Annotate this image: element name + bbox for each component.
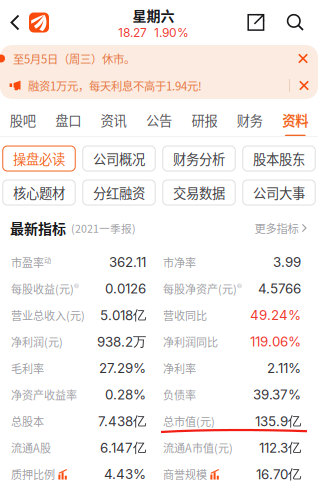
staticText: 质押比例: [11, 466, 55, 482]
staticText: 净利率: [163, 360, 196, 376]
staticText: 盘口: [55, 110, 81, 130]
staticText: ?: [75, 283, 77, 288]
staticText: 营业总收入(元): [11, 307, 85, 323]
staticText: (2021一季报): [71, 220, 136, 236]
staticText: 5.018亿: [100, 307, 146, 324]
button[interactable]: Close: [288, 45, 318, 72]
staticText: 交易数据: [173, 183, 225, 202]
staticText: 4.43%: [104, 466, 146, 482]
staticText: 公告: [146, 110, 172, 130]
staticText: 负债率: [163, 387, 196, 403]
staticText: 公司概况: [93, 149, 145, 168]
staticText: 流通A股: [11, 440, 51, 456]
staticText: 毛利率: [11, 360, 44, 376]
staticText: 更多指标: [255, 220, 299, 236]
staticText: 3.99: [273, 254, 301, 270]
staticText: 市净率: [163, 254, 196, 270]
staticText: 星期六: [132, 5, 174, 25]
staticText: 至5月5日（周三）休市。: [13, 50, 135, 67]
staticText: 财务分析: [173, 149, 225, 168]
button[interactable]: 研报: [182, 99, 227, 136]
button[interactable]: 财务分析: [163, 146, 235, 171]
staticText: 39.37%: [253, 387, 301, 403]
staticText: 27.29%: [99, 360, 146, 376]
button[interactable]: 操盘必读: [3, 146, 75, 171]
button[interactable]: 资料: [273, 99, 318, 136]
button[interactable]: Search: [284, 2, 306, 42]
button[interactable]: 公司概况: [83, 146, 155, 171]
button[interactable]: 股本股东: [243, 146, 315, 171]
button[interactable]: 公司大事: [243, 180, 315, 205]
button[interactable]: 盘口: [45, 99, 91, 136]
staticText: 0.28%: [105, 387, 146, 403]
staticText: 净利润(元): [11, 334, 63, 350]
staticText: 商誉规模: [163, 466, 207, 482]
button[interactable]: 公告: [136, 99, 182, 136]
staticText: 16.70亿: [256, 466, 301, 483]
staticText: 市盈率: [11, 254, 44, 270]
staticText: 18.27: [118, 25, 147, 40]
staticText: 净利润同比: [163, 334, 218, 350]
button[interactable]: 股吧: [0, 99, 45, 136]
staticText: 流通A市值(元): [163, 440, 233, 456]
staticText: 融资1万元，每天利息不高于1.94元!: [28, 77, 202, 94]
button[interactable]: Close: [290, 72, 318, 99]
staticText: 总市值(元): [163, 413, 215, 429]
staticText: 研报: [191, 110, 217, 130]
staticText: 0.0126: [105, 281, 146, 297]
staticText: 49.24%: [250, 307, 301, 323]
staticText: 每股收益(元): [11, 281, 74, 297]
staticText: 362.11: [109, 254, 146, 270]
staticText: 6.147亿: [100, 439, 146, 456]
staticText: 112.3亿: [259, 439, 301, 456]
button[interactable]: 更多指标: [255, 213, 318, 243]
button[interactable]: 资讯: [91, 99, 136, 136]
staticText: 135.9亿: [255, 413, 301, 430]
staticText: 7.438亿: [98, 413, 146, 430]
staticText: ?: [238, 283, 240, 288]
button[interactable]: Back: [0, 0, 62, 45]
button[interactable]: Share: [245, 2, 267, 42]
staticText: 动: [44, 254, 51, 265]
staticText: 股本股东: [253, 149, 305, 168]
staticText: 938.2万: [97, 333, 146, 350]
staticText: 资料: [282, 110, 308, 130]
staticText: 公司大事: [253, 183, 305, 202]
button[interactable]: 分红融资: [83, 180, 155, 205]
staticText: 分红融资: [93, 183, 145, 202]
button[interactable]: 财务: [227, 99, 272, 136]
staticText: 4.5766: [258, 281, 301, 297]
staticText: 119.06%: [250, 334, 301, 350]
staticText: 核心题材: [13, 183, 65, 202]
staticText: 总股本: [11, 413, 44, 429]
staticText: 营收同比: [163, 307, 207, 323]
staticText: 股吧: [10, 110, 36, 130]
button[interactable]: 交易数据: [163, 180, 235, 205]
staticText: 操盘必读: [13, 149, 65, 168]
button[interactable]: 核心题材: [3, 180, 75, 205]
staticText: 最新指标: [10, 218, 66, 238]
staticText: 2.11%: [267, 360, 301, 376]
staticText: 每股净资产(元): [163, 281, 237, 297]
staticText: 1.90%: [154, 25, 189, 40]
staticText: 财务: [237, 110, 263, 130]
staticText: 资讯: [101, 110, 127, 130]
staticText: 净资产收益率: [11, 387, 77, 403]
